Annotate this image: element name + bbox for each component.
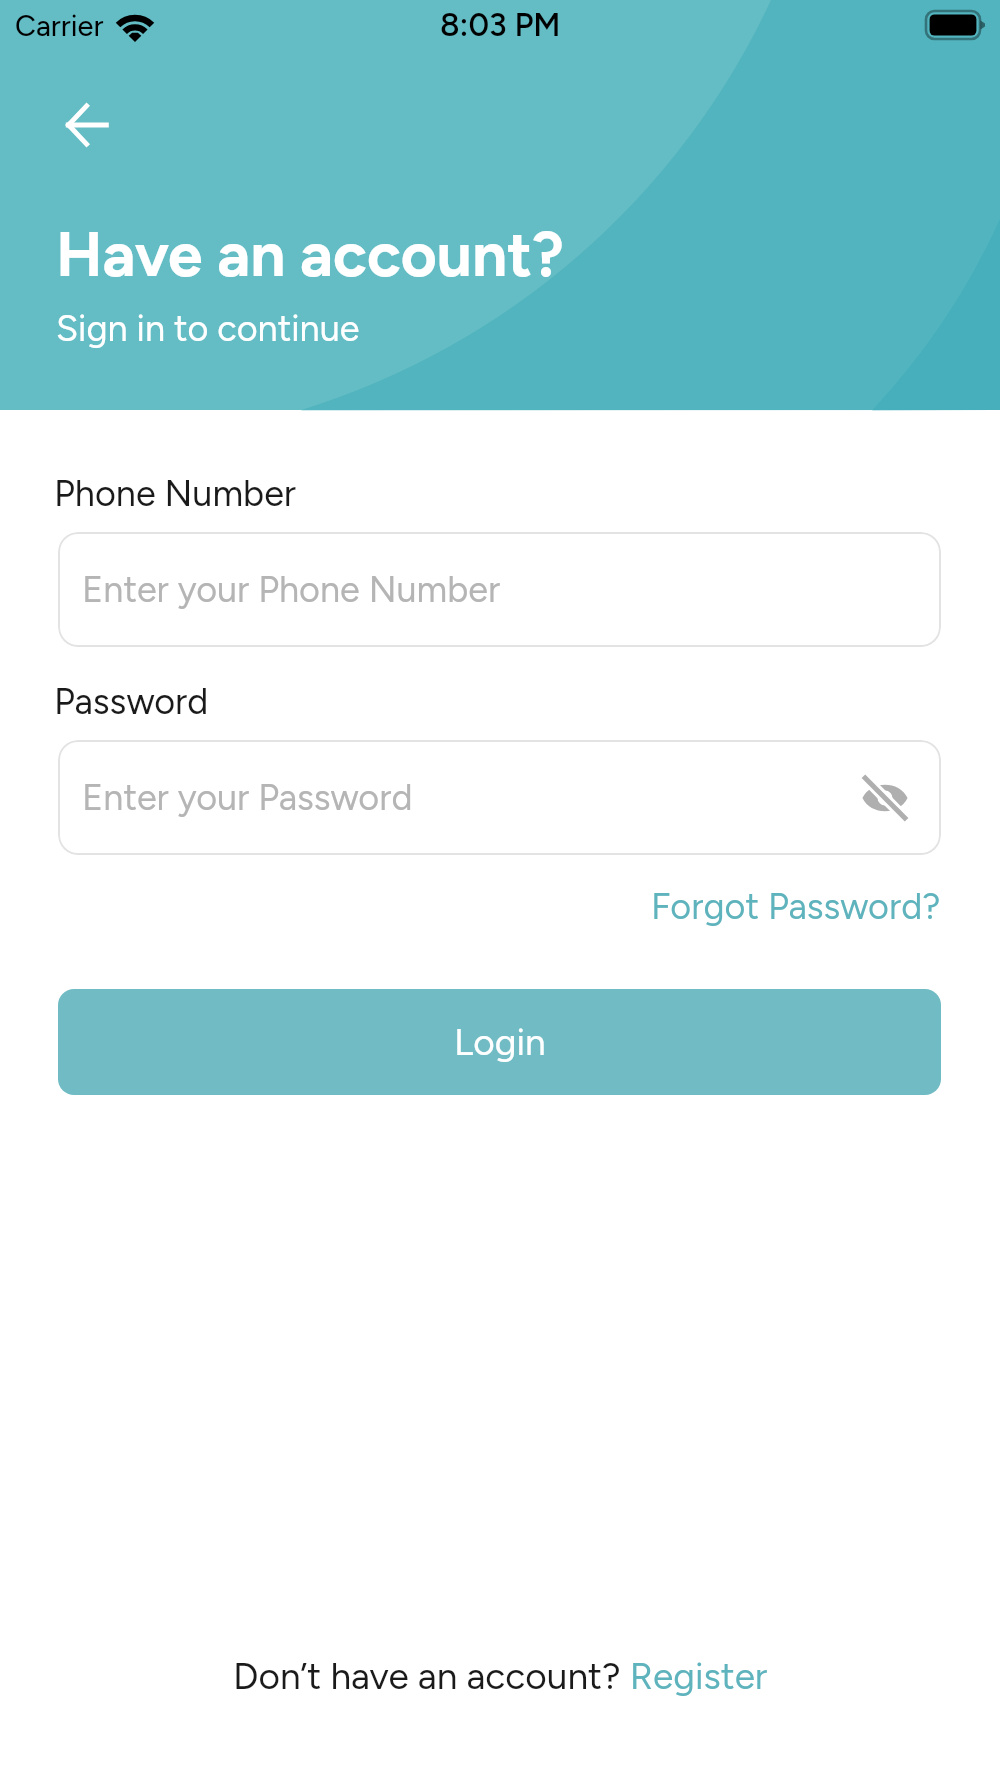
staticText: Carrier xyxy=(15,8,104,43)
staticText: Sign in to continue xyxy=(56,307,360,350)
button[interactable]: Show password xyxy=(855,768,915,828)
button[interactable]: Enter your Password xyxy=(58,740,941,855)
staticText: Enter your Phone Number xyxy=(82,568,501,611)
button[interactable]: Don’t have an account? Register xyxy=(233,1654,768,1698)
staticText: Login xyxy=(454,1020,546,1064)
staticText: 8:03 PM xyxy=(440,6,561,44)
staticText: Enter your Password xyxy=(82,776,413,819)
staticText: Forgot Password? xyxy=(651,885,941,928)
button[interactable]: Enter your Phone Number xyxy=(58,532,941,647)
staticText: Don’t have an account? Register xyxy=(233,1654,768,1698)
button[interactable]: Login xyxy=(58,989,941,1095)
button[interactable]: Forgot Password? xyxy=(651,885,941,928)
staticText: Phone Number xyxy=(54,472,296,515)
staticText: Have an account? xyxy=(56,217,564,291)
staticText: Password xyxy=(54,680,209,723)
button[interactable]: Back xyxy=(53,91,121,159)
